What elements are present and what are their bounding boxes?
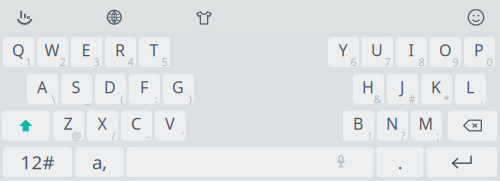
staticText: 4 bbox=[127, 55, 133, 69]
button[interactable]: a, bbox=[75, 147, 123, 177]
staticText: I bbox=[408, 39, 413, 61]
staticText: G bbox=[172, 76, 184, 98]
staticText: C bbox=[131, 113, 141, 134]
staticText: B bbox=[353, 113, 363, 134]
staticText: 6 bbox=[350, 55, 356, 69]
staticText: A bbox=[37, 76, 47, 98]
button[interactable]: B bbox=[343, 110, 374, 140]
staticText: 0 bbox=[486, 55, 492, 69]
button[interactable] bbox=[426, 147, 497, 177]
button[interactable]: K bbox=[421, 74, 452, 104]
staticText: U bbox=[371, 39, 383, 61]
staticText: . bbox=[397, 150, 402, 174]
staticText: M bbox=[418, 113, 433, 134]
staticText: : bbox=[154, 92, 157, 106]
button[interactable]: H bbox=[353, 74, 384, 104]
button[interactable] bbox=[2, 110, 49, 140]
staticText: . bbox=[480, 92, 483, 106]
button[interactable]: A bbox=[27, 74, 58, 104]
staticText: ; bbox=[436, 128, 439, 143]
staticText: P bbox=[474, 39, 484, 61]
staticText: @ bbox=[71, 128, 81, 143]
staticText: J bbox=[400, 76, 404, 98]
button[interactable]: C bbox=[121, 110, 152, 140]
staticText: ! bbox=[368, 128, 371, 143]
staticText: X bbox=[97, 113, 106, 134]
button[interactable]: L bbox=[455, 74, 486, 104]
staticText: / bbox=[111, 128, 115, 143]
staticText: ? bbox=[400, 128, 405, 143]
staticText: 1 bbox=[25, 55, 31, 69]
staticText: E bbox=[81, 39, 90, 61]
staticText: \ bbox=[51, 92, 55, 106]
staticText: 9 bbox=[452, 55, 458, 69]
staticText: # bbox=[408, 92, 415, 106]
button[interactable]: P bbox=[464, 37, 495, 67]
button[interactable]: F bbox=[129, 74, 160, 104]
staticText: N bbox=[386, 113, 398, 134]
staticText: R bbox=[115, 39, 125, 61]
staticText: 7 bbox=[384, 55, 390, 69]
staticText: _ bbox=[84, 92, 89, 106]
staticText: W bbox=[44, 39, 59, 61]
button[interactable]: TouchPal menu bbox=[9, 2, 39, 32]
button[interactable]: U bbox=[362, 37, 393, 67]
button[interactable]: V bbox=[155, 110, 186, 140]
staticText: Z bbox=[63, 113, 72, 134]
staticText: a, bbox=[92, 150, 107, 174]
staticText: 2 bbox=[59, 55, 65, 69]
staticText: 12# bbox=[20, 150, 54, 174]
button[interactable]: J bbox=[387, 74, 418, 104]
button[interactable]: M bbox=[411, 110, 442, 140]
button[interactable]: Z bbox=[53, 110, 84, 140]
button[interactable]: W bbox=[37, 37, 68, 67]
button[interactable]: Y bbox=[328, 37, 359, 67]
button[interactable]: Switch language bbox=[99, 2, 129, 32]
staticText: O bbox=[439, 39, 451, 61]
button[interactable]: 12# bbox=[3, 147, 72, 177]
staticText: S bbox=[71, 76, 80, 98]
staticText: ) bbox=[188, 92, 191, 106]
staticText: ' bbox=[181, 128, 183, 143]
staticText: T bbox=[149, 39, 158, 61]
staticText: F bbox=[140, 76, 148, 98]
button[interactable]: I bbox=[396, 37, 427, 67]
button[interactable]: . bbox=[376, 147, 423, 177]
staticText: 3 bbox=[93, 55, 99, 69]
button[interactable]: Q bbox=[3, 37, 34, 67]
button[interactable]: R bbox=[105, 37, 136, 67]
staticText: ( bbox=[120, 92, 123, 106]
staticText: 5 bbox=[161, 55, 167, 69]
button[interactable] bbox=[448, 110, 497, 140]
button[interactable] bbox=[126, 147, 373, 177]
staticText: - bbox=[146, 128, 149, 143]
button[interactable]: S bbox=[61, 74, 92, 104]
button[interactable]: O bbox=[430, 37, 461, 67]
staticText: D bbox=[104, 76, 116, 98]
staticText: * bbox=[443, 92, 449, 106]
staticText: V bbox=[165, 113, 175, 134]
staticText: K bbox=[431, 76, 441, 98]
staticText: Q bbox=[12, 39, 24, 61]
button[interactable]: Emoji bbox=[461, 2, 491, 32]
button[interactable]: Themes bbox=[189, 3, 219, 33]
button[interactable]: X bbox=[87, 110, 118, 140]
staticText: L bbox=[466, 76, 474, 98]
button[interactable]: N bbox=[377, 110, 408, 140]
staticText: 8 bbox=[418, 55, 424, 69]
staticText: H bbox=[362, 76, 374, 98]
staticText: & bbox=[373, 92, 381, 106]
staticText: Y bbox=[338, 39, 347, 61]
button[interactable]: G bbox=[163, 74, 194, 104]
button[interactable]: E bbox=[71, 37, 102, 67]
button[interactable]: D bbox=[95, 74, 126, 104]
button[interactable]: T bbox=[139, 37, 170, 67]
